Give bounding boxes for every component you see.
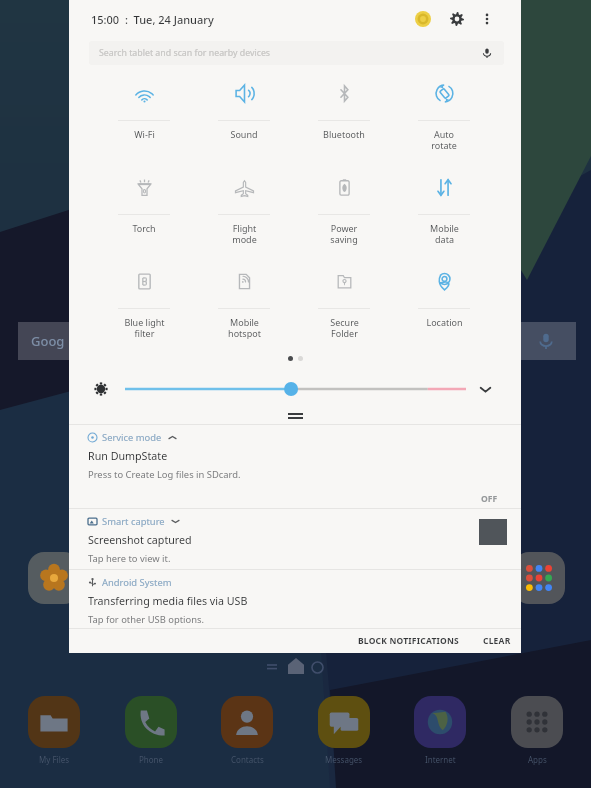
button[interactable]: Secure Folder bbox=[294, 261, 394, 355]
staticText: Press to Create Log files in SDcard. bbox=[88, 468, 241, 481]
staticText: BLOCK NOTIFICATIONS bbox=[358, 635, 459, 647]
button[interactable]: Bluetooth bbox=[294, 73, 394, 167]
button[interactable]: Phone bbox=[111, 696, 191, 765]
button[interactable]: Wi-Fi bbox=[94, 73, 194, 167]
button[interactable]: Back bbox=[307, 657, 327, 677]
button[interactable]: Internet bbox=[400, 696, 480, 765]
button[interactable]: Voice search bbox=[516, 322, 576, 360]
staticText: Phone bbox=[139, 754, 164, 765]
staticText: Goog bbox=[31, 332, 65, 350]
button[interactable]: Android System bbox=[69, 570, 521, 628]
button[interactable]: Settings bbox=[442, 4, 472, 34]
staticText: Service mode bbox=[102, 431, 162, 444]
staticText: Torch bbox=[132, 222, 156, 234]
button[interactable]: Expand brightness settings bbox=[475, 379, 495, 399]
button[interactable]: Sound bbox=[194, 73, 294, 167]
button[interactable]: Google folder bbox=[513, 552, 565, 604]
button[interactable]: BLOCK NOTIFICATIONS bbox=[354, 631, 463, 651]
button[interactable]: Location bbox=[394, 261, 494, 355]
staticText: Power saving bbox=[330, 222, 358, 245]
button[interactable]: Auto rotate bbox=[394, 73, 494, 167]
staticText: Location bbox=[426, 316, 463, 328]
button[interactable]: Torch bbox=[94, 167, 194, 261]
staticText: 15:00 : Tue, 24 January bbox=[91, 12, 214, 27]
staticText: Wi-Fi bbox=[134, 128, 155, 140]
staticText: Mobile data bbox=[430, 222, 459, 245]
staticText: Tap for other USB options. bbox=[88, 613, 205, 626]
staticText: Auto rotate bbox=[431, 128, 457, 151]
button[interactable]: Power saving bbox=[294, 167, 394, 261]
staticText: Apps bbox=[528, 754, 547, 765]
staticText: Blue light filter bbox=[124, 316, 165, 339]
staticText: Android System bbox=[102, 576, 172, 589]
staticText: OFF bbox=[481, 493, 498, 505]
button[interactable]: More options bbox=[472, 4, 502, 34]
button[interactable]: Blue light filter bbox=[94, 261, 194, 355]
button[interactable]: Flight mode bbox=[194, 167, 294, 261]
button[interactable]: Mobile data bbox=[394, 167, 494, 261]
button[interactable]: Recents bbox=[262, 657, 282, 677]
staticText: Flight mode bbox=[232, 222, 257, 245]
staticText: Screenshot captured bbox=[88, 533, 192, 548]
staticText: Tap here to view it. bbox=[88, 552, 171, 565]
staticText: CLEAR bbox=[483, 635, 511, 647]
staticText: Contacts bbox=[231, 754, 264, 765]
staticText: Secure Folder bbox=[330, 316, 359, 339]
button[interactable]: User profile bbox=[408, 4, 438, 34]
button[interactable]: OFF bbox=[473, 485, 506, 513]
button[interactable]: Galaxy Apps bbox=[28, 552, 80, 604]
staticText: Transferring media files via USB bbox=[88, 594, 248, 609]
button[interactable]: CLEAR bbox=[479, 631, 515, 651]
staticText: Sound bbox=[230, 128, 258, 140]
button[interactable]: Contacts bbox=[207, 696, 287, 765]
button[interactable]: Google search bbox=[18, 322, 78, 360]
button[interactable]: Smart capture bbox=[69, 509, 521, 569]
staticText: Bluetooth bbox=[323, 128, 365, 140]
button[interactable]: Apps bbox=[497, 696, 577, 765]
staticText: Mobile hotspot bbox=[228, 316, 261, 339]
staticText: Internet bbox=[425, 754, 456, 765]
staticText: Messages bbox=[325, 754, 363, 765]
button[interactable]: Service mode bbox=[69, 425, 521, 508]
staticText: Search tablet and scan for nearby device… bbox=[99, 47, 271, 59]
staticText: My Files bbox=[39, 754, 70, 765]
button[interactable]: Search tablet and scan for nearby device… bbox=[89, 41, 504, 65]
button[interactable]: Messages bbox=[304, 696, 384, 765]
button[interactable]: Home bbox=[284, 654, 308, 678]
staticText: Smart capture bbox=[102, 515, 165, 528]
button[interactable]: My Files bbox=[14, 696, 94, 765]
staticText: Run DumpState bbox=[88, 449, 168, 464]
button[interactable]: Mobile hotspot bbox=[194, 261, 294, 355]
